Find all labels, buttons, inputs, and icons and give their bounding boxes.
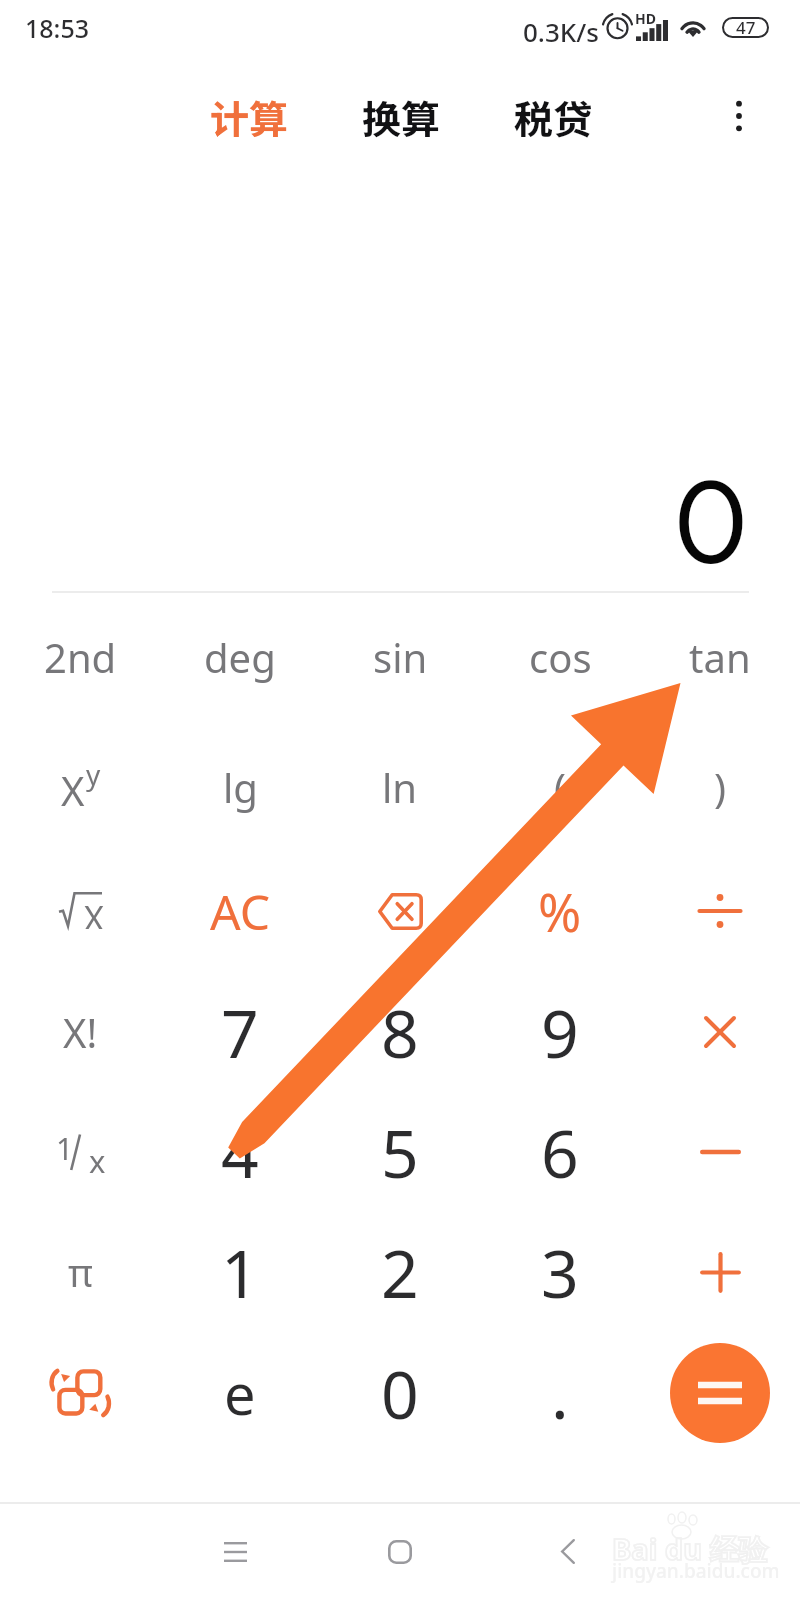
button[interactable]: e (160, 1333, 320, 1453)
staticText: 18:53 (25, 11, 90, 45)
button[interactable]: sin (320, 597, 480, 717)
staticText: 5 (381, 1107, 419, 1197)
button[interactable]: lg (160, 727, 320, 847)
staticText: ) (714, 760, 726, 814)
staticText: 1 (56, 1128, 74, 1164)
button[interactable]: More options (704, 81, 774, 151)
staticText: 7 (221, 987, 259, 1077)
staticText: 0 (381, 1348, 419, 1438)
staticText: x (89, 1140, 106, 1176)
other: Multiply (704, 1016, 736, 1048)
staticText: 计算 (210, 89, 289, 145)
staticText: 2 (381, 1227, 419, 1317)
staticText: AC (210, 879, 271, 944)
other: Divide (699, 890, 741, 932)
staticText: 9 (541, 987, 579, 1077)
button[interactable]: ) (640, 727, 800, 847)
staticText: X (84, 895, 104, 929)
staticText: 3 (541, 1227, 579, 1317)
staticText: HD (635, 9, 656, 28)
button[interactable]: 计算 (189, 84, 309, 150)
staticText: 换算 (362, 89, 441, 145)
staticText: lg (223, 760, 258, 814)
button[interactable]: π (0, 1212, 160, 1332)
button[interactable]: 8 (320, 972, 480, 1092)
other: Plus (700, 1252, 741, 1293)
button[interactable]: 4 (160, 1092, 320, 1212)
staticText: 2nd (44, 630, 117, 684)
staticText: tan (689, 630, 751, 684)
staticText: 4 (221, 1107, 259, 1197)
button[interactable]: X! (0, 972, 160, 1092)
staticText: X! (63, 1005, 98, 1059)
staticText: X (61, 763, 85, 817)
button[interactable]: Recent apps (185, 1503, 285, 1600)
staticText: deg (204, 630, 276, 684)
button[interactable]: Multiply (640, 972, 800, 1092)
staticText: π (68, 1246, 93, 1298)
staticText: 0.3K/s (523, 14, 599, 49)
button[interactable]: 6 (480, 1092, 640, 1212)
button[interactable]: ( (480, 727, 640, 847)
staticText: % (538, 876, 582, 947)
staticText: . (551, 1348, 569, 1438)
staticText: 47 (736, 16, 756, 37)
staticText: jingyan.baidu.com (612, 1558, 780, 1584)
button[interactable]: Plus (640, 1212, 800, 1332)
staticText: 1 (221, 1227, 259, 1317)
button[interactable]: ln (320, 727, 480, 847)
button[interactable]: Unit convert (0, 1333, 160, 1453)
staticText: sin (373, 630, 428, 684)
button[interactable]: 2nd (0, 597, 160, 717)
button[interactable]: 0 (320, 1333, 480, 1453)
button[interactable]: Back (518, 1503, 618, 1600)
staticText: 0 (674, 454, 748, 592)
button[interactable]: 税贷 (493, 84, 613, 150)
other: Unit convert (51, 1367, 109, 1419)
button[interactable]: 7 (160, 972, 320, 1092)
staticText: 8 (381, 987, 419, 1077)
button[interactable]: % (480, 851, 640, 971)
button[interactable]: Minus (640, 1092, 800, 1212)
other: Minus (700, 1148, 741, 1156)
other: Backspace (377, 893, 423, 930)
button[interactable]: . (480, 1333, 640, 1453)
button[interactable]: X (0, 851, 160, 971)
staticText: 税贷 (514, 89, 593, 145)
button[interactable]: 5 (320, 1092, 480, 1212)
staticText: y (86, 755, 101, 793)
button[interactable]: Backspace (320, 851, 480, 971)
button[interactable]: 1 (160, 1212, 320, 1332)
staticText: cos (529, 630, 592, 684)
button[interactable]: 1 (0, 1092, 160, 1212)
staticText: ( (554, 760, 566, 814)
button[interactable]: Divide (640, 851, 800, 971)
button[interactable]: AC (160, 851, 320, 971)
button[interactable]: 换算 (341, 84, 461, 150)
staticText: Bai du 经验 (612, 1529, 768, 1569)
button[interactable]: Equals (670, 1343, 770, 1443)
button[interactable]: 9 (480, 972, 640, 1092)
button[interactable]: 2 (320, 1212, 480, 1332)
button[interactable]: tan (640, 597, 800, 717)
button[interactable]: cos (480, 597, 640, 717)
staticText: ln (382, 760, 418, 814)
button[interactable]: X (0, 727, 160, 847)
button[interactable]: 3 (480, 1212, 640, 1332)
button[interactable]: Home (350, 1503, 450, 1600)
button[interactable]: deg (160, 597, 320, 717)
staticText: e (224, 1355, 256, 1431)
staticText: 6 (541, 1107, 579, 1197)
